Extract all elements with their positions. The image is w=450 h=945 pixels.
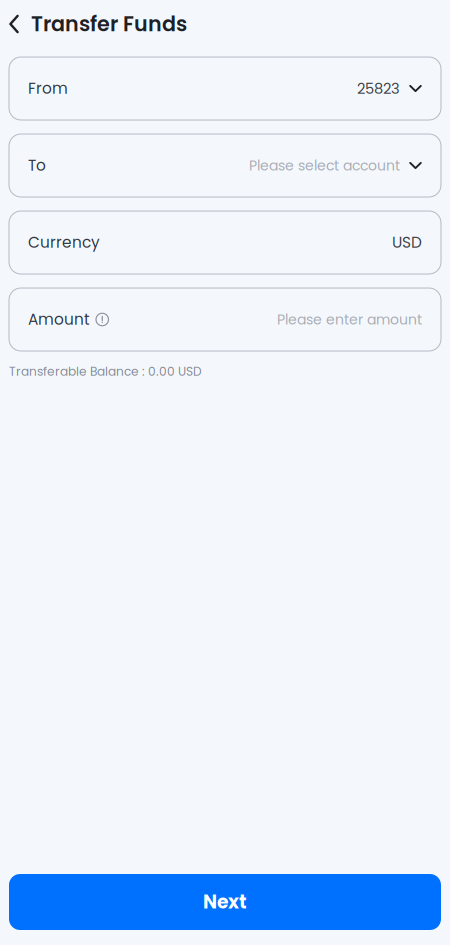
button[interactable]: From (9, 57, 441, 120)
staticText: Currency (28, 232, 100, 253)
button[interactable]: Amount (9, 288, 441, 351)
staticText: Please enter amount (277, 310, 422, 329)
button[interactable]: Next (9, 874, 441, 930)
staticText: 25823 (357, 78, 400, 99)
staticText: Transfer Funds (31, 9, 187, 38)
staticText: Next (203, 889, 247, 915)
staticText: USD (392, 232, 422, 253)
staticText: To (28, 155, 46, 176)
staticText: Amount (28, 309, 90, 330)
staticText: Transferable Balance : 0.00 USD (9, 363, 202, 380)
button[interactable]: To (9, 134, 441, 197)
button[interactable]: Currency (9, 211, 441, 274)
staticText: Please select account (249, 156, 400, 175)
button[interactable]: Back (0, 7, 30, 41)
staticText: From (28, 78, 68, 99)
